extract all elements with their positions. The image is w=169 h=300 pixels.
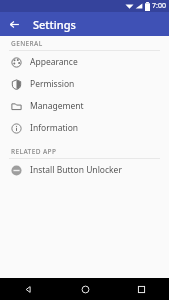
staticText: Install Button Unlocker <box>30 164 122 176</box>
staticText: Management <box>30 100 84 112</box>
staticText: Settings <box>33 17 76 32</box>
staticText: 7:00 <box>152 1 166 11</box>
staticText: GENERAL <box>11 39 43 48</box>
button[interactable]: Information <box>0 117 169 139</box>
button[interactable]: Back <box>4 14 24 34</box>
staticText: Appearance <box>30 56 78 68</box>
button[interactable]: Back <box>0 278 57 300</box>
button[interactable]: Recent apps <box>113 278 169 300</box>
button[interactable]: Appearance <box>0 51 169 73</box>
button[interactable]: Management <box>0 95 169 117</box>
staticText: Permission <box>30 78 75 90</box>
staticText: Information <box>30 122 79 134</box>
staticText: RELATED APP <box>11 147 57 156</box>
button[interactable]: Install Button Unlocker <box>0 159 169 181</box>
button[interactable]: Home <box>57 278 113 300</box>
button[interactable]: Permission <box>0 73 169 95</box>
